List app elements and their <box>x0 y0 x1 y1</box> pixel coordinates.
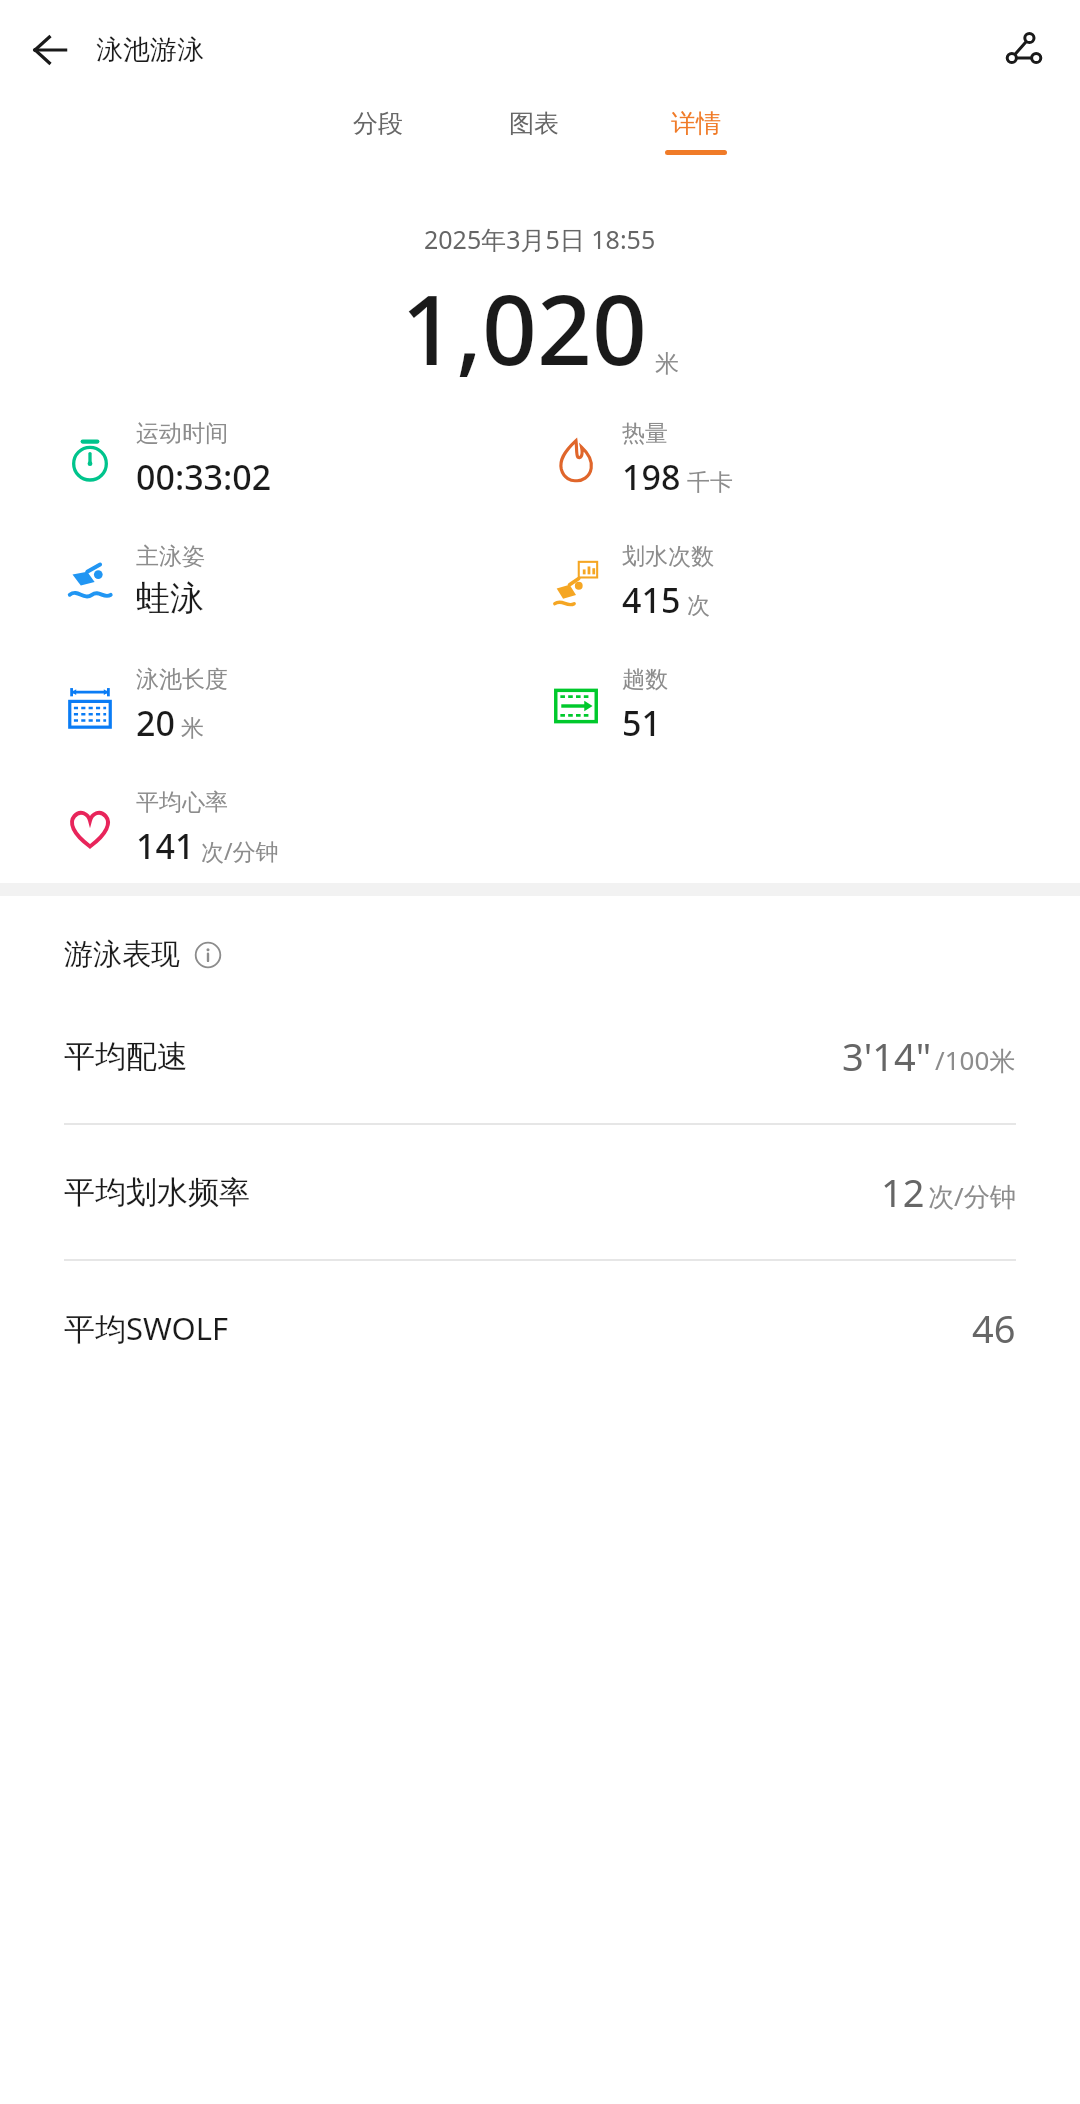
staticText: 次/分钟 <box>201 835 279 866</box>
button[interactable]: 平均心率 <box>0 788 540 869</box>
staticText: 米 <box>655 349 679 379</box>
staticText: 198 <box>622 454 681 500</box>
button[interactable]: Share <box>988 15 1058 85</box>
staticText: 图表 <box>509 108 559 139</box>
button[interactable]: 泳池长度 <box>0 665 540 746</box>
staticText: 平均划水频率 <box>64 1173 250 1212</box>
button[interactable]: 运动时间 <box>0 419 540 500</box>
staticText: 次 <box>687 591 710 620</box>
staticText: 分段 <box>353 108 403 139</box>
staticText: 运动时间 <box>136 419 228 448</box>
staticText: 平均心率 <box>136 788 228 817</box>
staticText: 千卡 <box>687 468 733 497</box>
staticText: 次/分钟 <box>928 1178 1016 1214</box>
button[interactable]: Back <box>18 18 82 82</box>
button[interactable]: 趟数 <box>540 665 1080 746</box>
staticText: 46 <box>972 1302 1016 1354</box>
button[interactable]: 游泳表现 <box>0 936 1080 973</box>
staticText: 趟数 <box>622 665 668 694</box>
staticText: 2025年3月5日 18:55 <box>424 222 656 256</box>
staticText: 1,020 <box>401 262 647 393</box>
staticText: 详情 <box>671 108 721 139</box>
staticText: 蛙泳 <box>136 577 204 620</box>
staticText: 12 <box>881 1166 925 1218</box>
button[interactable]: 平均配速 <box>0 989 1080 1123</box>
button[interactable]: 图表 <box>499 100 569 158</box>
staticText: /100米 <box>935 1042 1016 1078</box>
staticText: 141 <box>136 823 195 869</box>
button[interactable]: 详情 <box>655 100 737 163</box>
staticText: 游泳表现 <box>64 936 180 973</box>
staticText: 20 <box>136 700 175 746</box>
staticText: 51 <box>622 700 661 746</box>
button[interactable]: 分段 <box>343 100 413 158</box>
staticText: 415 <box>622 577 681 623</box>
staticText: 平均SWOLF <box>64 1307 229 1349</box>
button[interactable]: 热量 <box>540 419 1080 500</box>
staticText: 热量 <box>622 419 668 448</box>
button[interactable]: 主泳姿 <box>0 542 540 620</box>
button[interactable]: 平均SWOLF <box>0 1261 1080 1395</box>
other: Info <box>194 941 222 969</box>
staticText: 泳池长度 <box>136 665 228 694</box>
staticText: 00:33:02 <box>136 454 272 500</box>
staticText: 平均配速 <box>64 1037 188 1076</box>
staticText: 划水次数 <box>622 542 714 571</box>
staticText: 3'14" <box>842 1030 932 1082</box>
staticText: 泳池游泳 <box>96 33 204 67</box>
button[interactable]: 平均划水频率 <box>0 1125 1080 1259</box>
button[interactable]: 划水次数 <box>540 542 1080 623</box>
staticText: 主泳姿 <box>136 542 205 571</box>
staticText: 米 <box>181 714 204 743</box>
